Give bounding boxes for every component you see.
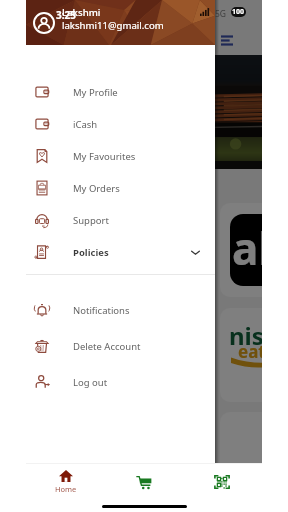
staticText: Home bbox=[55, 484, 77, 494]
button[interactable]: Policies bbox=[26, 236, 215, 268]
button[interactable]: iCash bbox=[26, 108, 215, 140]
staticText: iCash bbox=[73, 118, 98, 131]
button[interactable]: Scan QR code bbox=[207, 467, 237, 497]
staticText: My Favourites bbox=[73, 150, 136, 163]
staticText: Support bbox=[73, 214, 109, 227]
staticText: Policies bbox=[73, 246, 109, 259]
button[interactable]: Cart bbox=[129, 467, 159, 497]
staticText: My Profile bbox=[73, 86, 118, 99]
button[interactable]: Support bbox=[26, 204, 215, 236]
staticText: nis bbox=[229, 319, 262, 352]
staticText: lakshmi11@gmail.com bbox=[62, 19, 164, 32]
staticText: Log out bbox=[73, 376, 108, 389]
button[interactable]: My Favourites bbox=[26, 140, 215, 172]
staticText: Notifications bbox=[73, 304, 130, 317]
staticText: all bbox=[232, 218, 262, 278]
staticText: eat bbox=[238, 340, 262, 363]
staticText: 100 bbox=[232, 7, 245, 17]
button[interactable]: Delete Account bbox=[26, 330, 215, 362]
staticText: 5G bbox=[215, 8, 227, 20]
staticText: Lakshmi bbox=[62, 6, 101, 19]
staticText: 3:25 bbox=[56, 8, 76, 22]
button[interactable]: My Profile bbox=[26, 76, 215, 108]
staticText: My Orders bbox=[73, 182, 120, 195]
staticText: Delete Account bbox=[73, 340, 141, 353]
button[interactable]: Notifications bbox=[26, 294, 215, 326]
button[interactable]: Log out bbox=[26, 366, 215, 398]
button[interactable]: My Orders bbox=[26, 172, 215, 204]
button[interactable]: Open navigation menu bbox=[217, 31, 237, 51]
button[interactable]: Home bbox=[42, 464, 89, 497]
